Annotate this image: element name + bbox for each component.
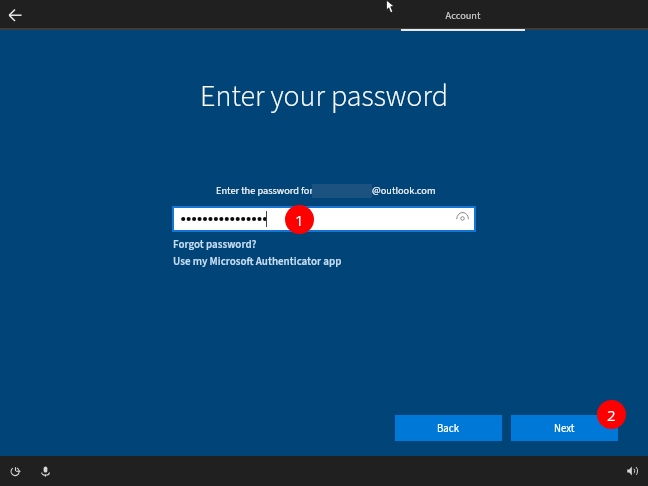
button[interactable]: 2 — [597, 400, 626, 429]
staticText: Forgot password? — [173, 237, 257, 253]
button[interactable]: Back — [395, 415, 502, 441]
staticText: Use my Microsoft Authenticator app — [173, 254, 342, 270]
button[interactable]: Back — [0, 0, 32, 28]
staticText: Next — [554, 421, 575, 436]
button[interactable]: Show password — [174, 208, 474, 230]
button[interactable]: Forgot password? — [172, 236, 258, 254]
staticText: Back — [437, 421, 460, 436]
staticText: 1 — [295, 210, 304, 230]
button[interactable]: Use my Microsoft Authenticator app — [172, 253, 343, 271]
button[interactable]: Account — [401, 0, 525, 28]
button[interactable]: 1 — [285, 205, 314, 234]
button[interactable]: Volume — [621, 460, 643, 482]
button[interactable]: Next — [511, 415, 618, 441]
staticText: @outlook.com — [372, 183, 436, 198]
button[interactable]: Show password — [450, 205, 474, 227]
staticText: Enter your password — [0, 75, 648, 118]
button[interactable]: Ease of access — [34, 460, 56, 482]
staticText: Account — [401, 8, 525, 23]
staticText: 2 — [607, 405, 616, 425]
button[interactable]: Power — [4, 460, 26, 482]
staticText: Enter the password for — [216, 183, 314, 198]
